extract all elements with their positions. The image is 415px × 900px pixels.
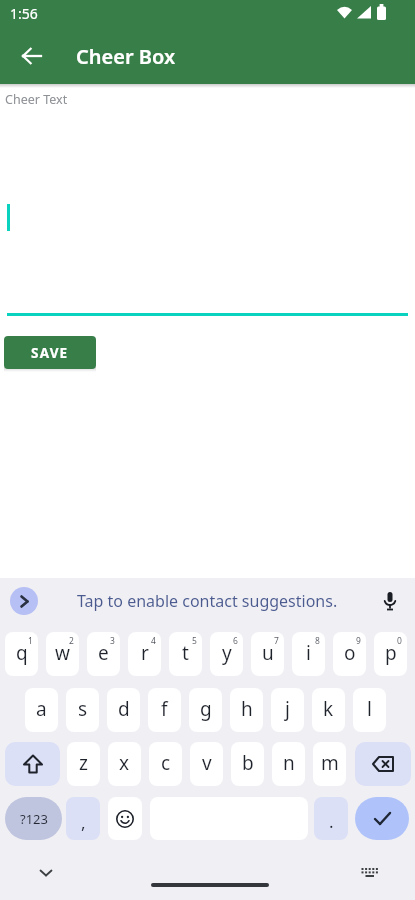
staticText: Tap to enable contact suggestions. [77,590,338,612]
staticText: d [118,696,130,722]
staticText: 6 [233,635,238,647]
staticText: q [16,640,28,666]
button[interactable]: p [374,632,407,676]
staticText: t [182,640,189,666]
staticText: y [222,640,232,666]
button[interactable] [28,858,64,888]
staticText: , [81,811,86,834]
button[interactable]: o [333,632,366,676]
button[interactable]: j [271,688,304,732]
staticText: 4 [151,635,156,647]
staticText: Cheer Box [76,43,176,70]
button[interactable] [352,858,388,888]
staticText: 9 [356,635,361,647]
button[interactable] [108,797,142,840]
button[interactable] [12,42,52,70]
staticText: i [306,640,311,666]
staticText: v [202,750,212,776]
staticText: k [323,696,334,722]
button[interactable]: y [210,632,243,676]
staticText: l [367,696,372,722]
button[interactable]: . [314,797,348,840]
button[interactable]: ?123 [5,797,62,840]
button[interactable]: z [67,742,100,786]
staticText: m [321,750,339,776]
staticText: g [200,696,212,722]
button[interactable]: Tap to enable contact suggestions. [0,587,415,615]
button[interactable]: a [25,688,58,732]
button[interactable]: h [230,688,263,732]
staticText: 1 [28,635,33,647]
staticText: b [242,750,254,776]
staticText: h [241,696,253,722]
staticText: . [329,810,334,833]
button[interactable] [376,587,404,615]
button[interactable]: c [149,742,182,786]
button[interactable]: d [107,688,140,732]
staticText: z [79,750,88,776]
button[interactable]: , [66,797,100,840]
staticText: o [344,640,356,666]
staticText: a [36,696,47,722]
button[interactable]: l [353,688,386,732]
staticText: 8 [315,635,320,647]
button[interactable]: t [169,632,202,676]
staticText: 7 [274,635,279,647]
button[interactable]: b [231,742,264,786]
button[interactable] [5,742,60,786]
staticText: c [161,750,171,776]
staticText: e [98,640,109,666]
button[interactable] [355,742,411,786]
button[interactable]: k [312,688,345,732]
button[interactable]: f [148,688,181,732]
staticText: 5 [192,635,197,647]
staticText: f [161,696,168,722]
button[interactable]: g [189,688,222,732]
button[interactable]: e [87,632,120,676]
staticText: r [141,640,149,666]
button[interactable]: q [5,632,38,676]
staticText: s [78,696,88,722]
button[interactable]: s [66,688,99,732]
staticText: x [119,750,130,776]
button[interactable]: r [128,632,161,676]
staticText: 1:56 [10,4,38,23]
button[interactable]: v [190,742,223,786]
staticText: Cheer Text [5,91,68,108]
button[interactable]: SAVE [4,336,96,369]
button[interactable] [10,587,38,615]
button[interactable] [355,797,409,840]
staticText: n [283,750,295,776]
staticText: ?123 [20,810,48,828]
staticText: u [262,640,274,666]
button[interactable]: i [292,632,325,676]
staticText: 3 [110,635,115,647]
staticText: p [385,640,397,666]
button[interactable]: n [272,742,305,786]
button[interactable]: m [313,742,346,786]
staticText: w [55,640,70,666]
staticText: 2 [69,635,74,647]
button[interactable]: x [108,742,141,786]
button[interactable]: u [251,632,284,676]
button[interactable]: w [46,632,79,676]
staticText: SAVE [31,344,69,362]
staticText: 0 [397,635,402,647]
staticText: j [285,696,290,722]
